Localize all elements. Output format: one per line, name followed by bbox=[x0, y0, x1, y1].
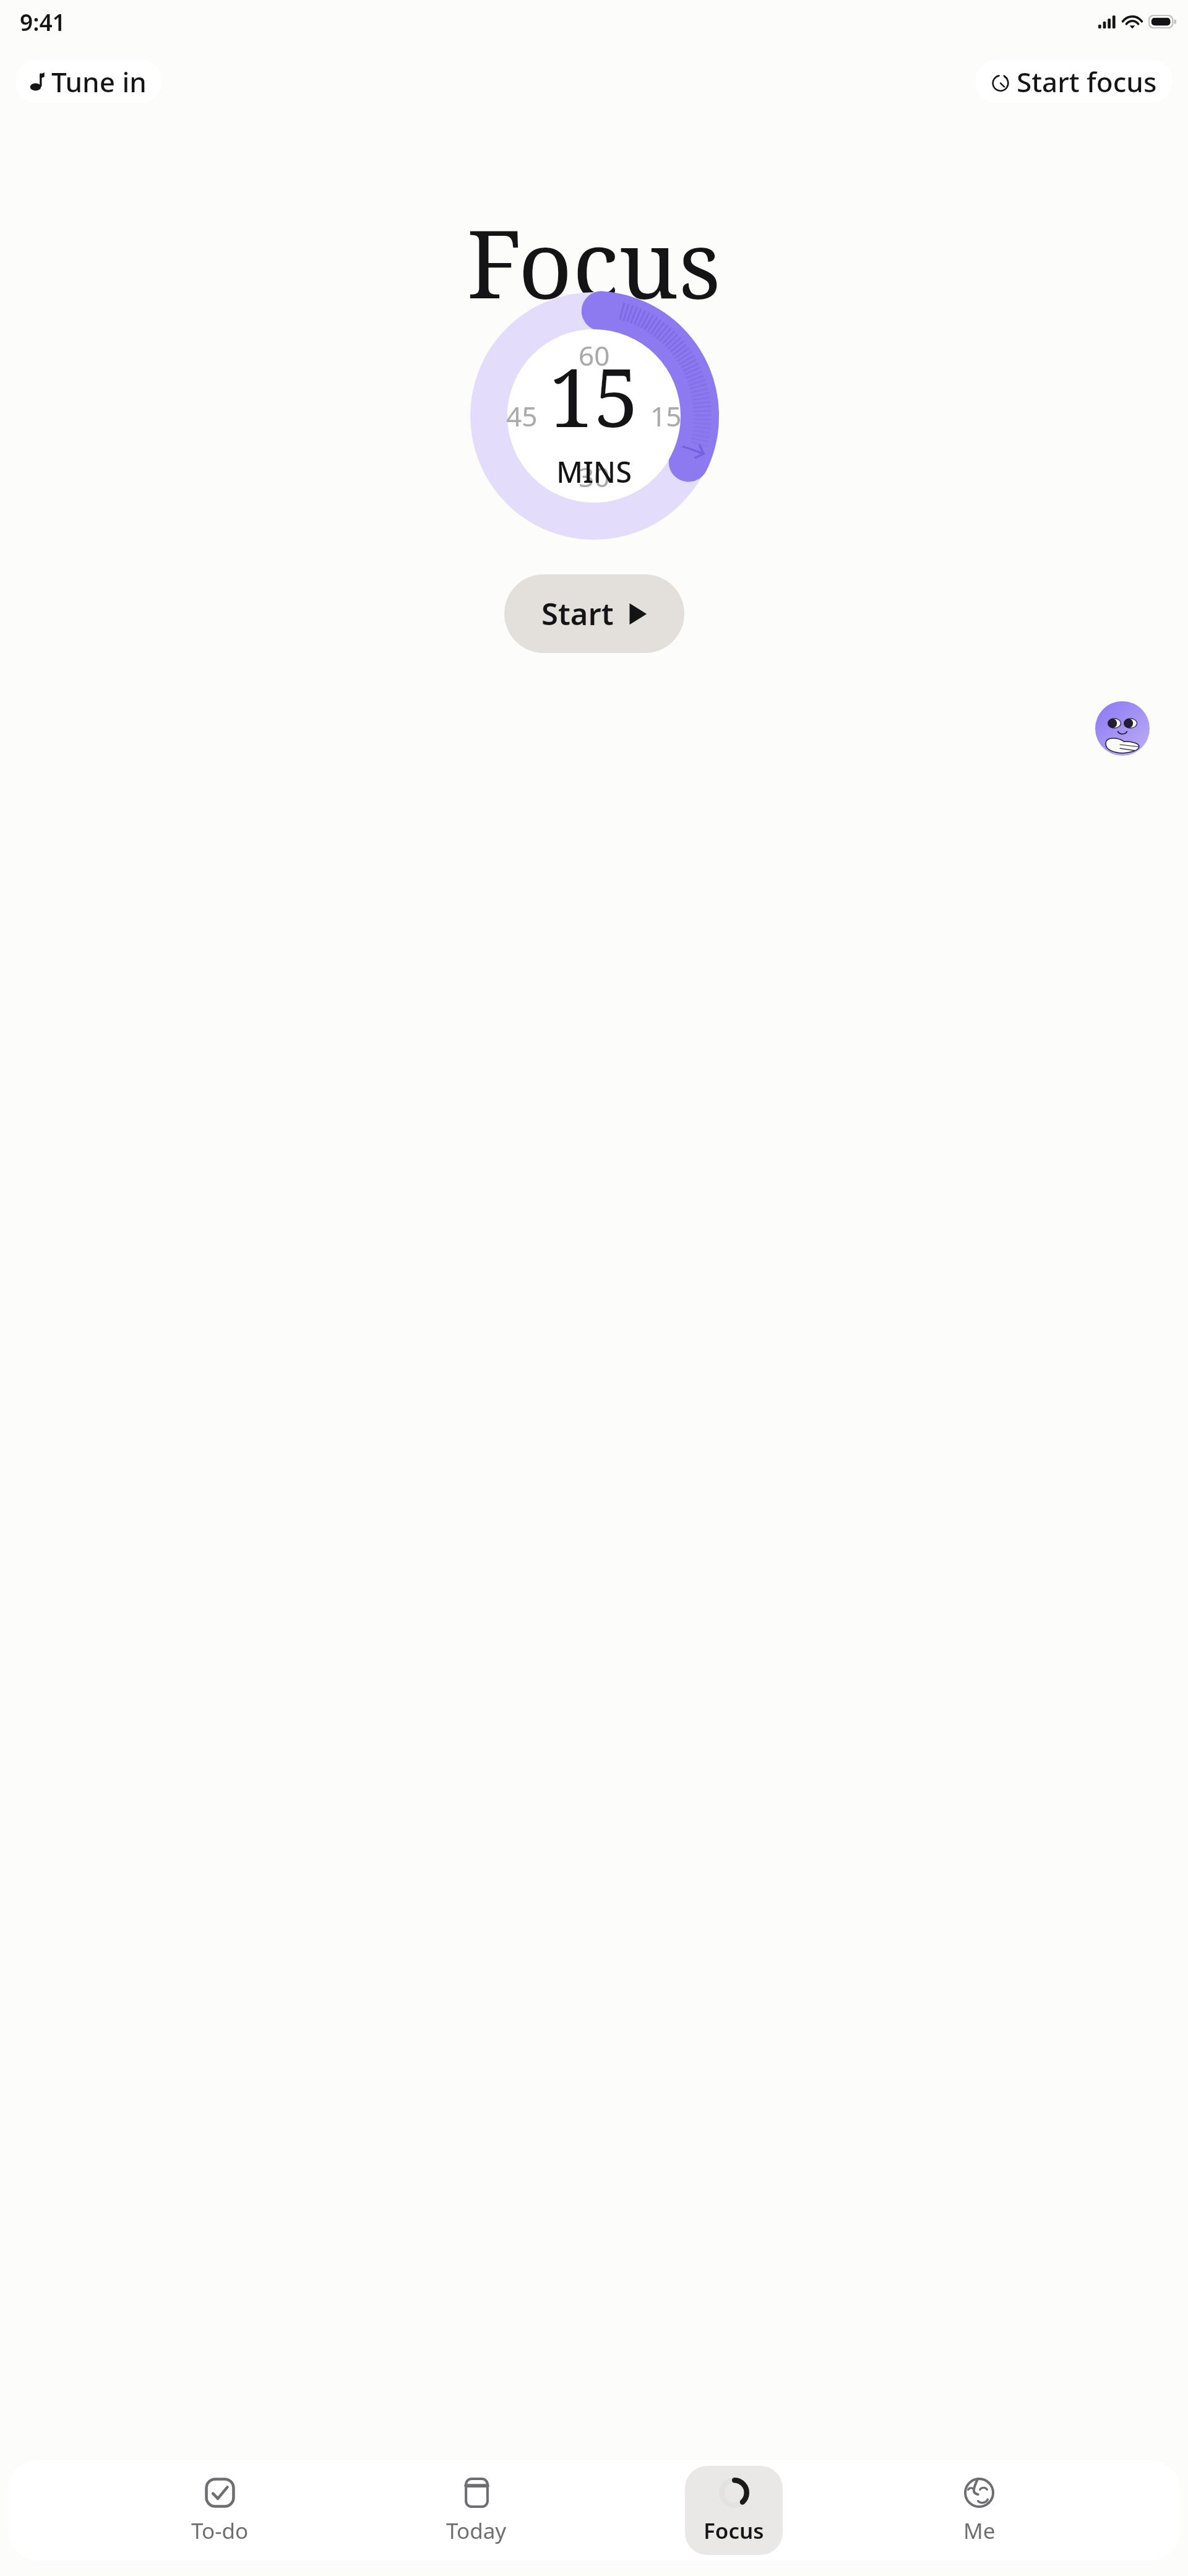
button[interactable]: Assistant character bbox=[1095, 701, 1150, 756]
staticText: Tune in bbox=[51, 63, 147, 100]
button[interactable]: Today bbox=[428, 2466, 525, 2555]
staticText: Start focus bbox=[1017, 63, 1157, 100]
staticText: 9:41 bbox=[20, 6, 66, 37]
staticText: Start bbox=[541, 593, 614, 634]
staticText: 15 bbox=[650, 397, 682, 434]
staticText: Today bbox=[446, 2516, 507, 2546]
button[interactable]: To-do bbox=[173, 2466, 267, 2555]
staticText: Focus bbox=[467, 198, 721, 326]
button[interactable]: Focus bbox=[685, 2466, 783, 2555]
button[interactable]: Start bbox=[504, 574, 684, 653]
staticText: 30 bbox=[579, 458, 610, 495]
button[interactable]: Start focus bbox=[975, 60, 1173, 103]
staticText: 45 bbox=[506, 397, 538, 434]
button[interactable]: Focus duration dial, 15 minutes bbox=[470, 292, 718, 540]
staticText: 15 bbox=[549, 341, 639, 451]
staticText: Focus bbox=[704, 2516, 764, 2546]
staticText: 60 bbox=[579, 337, 610, 374]
staticText: Me bbox=[963, 2516, 996, 2546]
button[interactable]: Tune in bbox=[15, 60, 162, 103]
staticText: To-do bbox=[191, 2516, 249, 2546]
button[interactable]: Me bbox=[943, 2466, 1015, 2555]
staticText: MINS bbox=[556, 452, 632, 491]
